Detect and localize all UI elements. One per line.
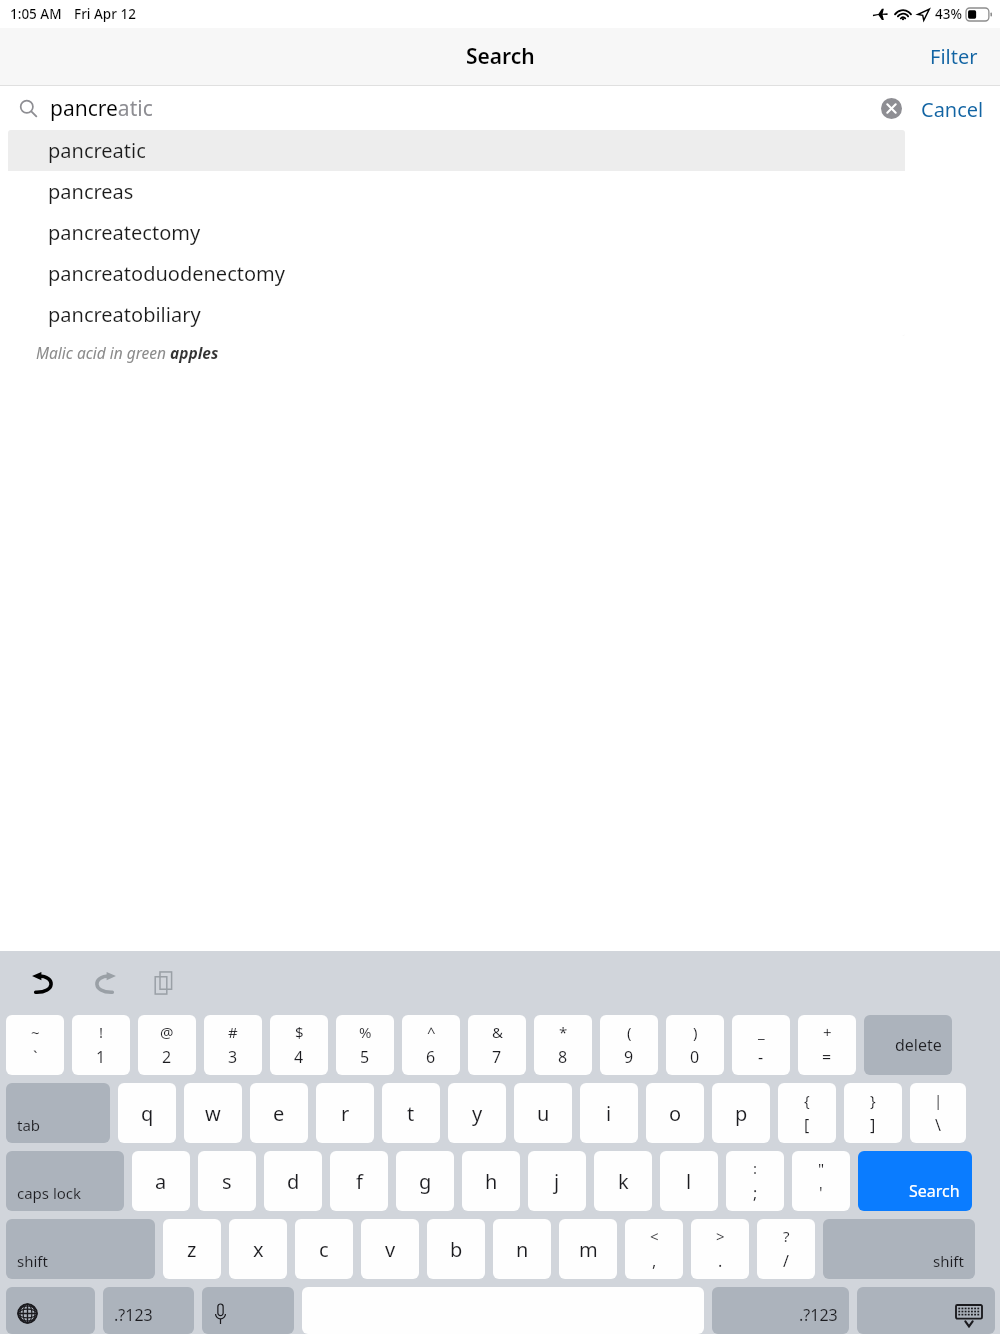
staticText: j xyxy=(554,1168,560,1195)
button[interactable]: } xyxy=(844,1083,902,1143)
button[interactable]: .?123 xyxy=(712,1287,849,1334)
staticText: e xyxy=(273,1100,285,1127)
button[interactable]: ~ xyxy=(6,1015,64,1075)
button[interactable]: p xyxy=(712,1083,770,1143)
button[interactable]: | xyxy=(910,1083,966,1143)
button[interactable]: x xyxy=(229,1219,287,1279)
button[interactable]: h xyxy=(462,1151,520,1211)
button[interactable]: ? xyxy=(757,1219,815,1279)
button[interactable]: " xyxy=(792,1151,850,1211)
staticText: % xyxy=(359,1022,372,1042)
button[interactable]: e xyxy=(250,1083,308,1143)
staticText: delete xyxy=(895,1034,942,1056)
button[interactable]: pancreatic xyxy=(0,86,869,130)
button[interactable]: Hide keyboard xyxy=(857,1287,995,1334)
button[interactable]: $ xyxy=(270,1015,328,1075)
staticText: & xyxy=(492,1022,503,1042)
button[interactable]: t xyxy=(382,1083,440,1143)
button[interactable]: pancreatobiliary xyxy=(8,294,905,335)
button[interactable]: l xyxy=(660,1151,718,1211)
staticText: } xyxy=(870,1090,876,1110)
button[interactable]: Paste xyxy=(142,961,186,1005)
staticText: pancreatic xyxy=(48,137,146,164)
button[interactable]: a xyxy=(132,1151,190,1211)
button[interactable]: pancreatectomy xyxy=(8,212,905,253)
button[interactable]: shift xyxy=(823,1219,975,1279)
staticText: 6 xyxy=(426,1046,436,1068)
button[interactable]: Clear text xyxy=(869,86,913,130)
button[interactable]: _ xyxy=(732,1015,790,1075)
button[interactable]: .?123 xyxy=(103,1287,194,1334)
button[interactable]: c xyxy=(295,1219,353,1279)
button[interactable]: q xyxy=(118,1083,176,1143)
staticText: 9 xyxy=(624,1046,634,1068)
button[interactable]: : xyxy=(726,1151,784,1211)
button[interactable]: @ xyxy=(138,1015,196,1075)
button[interactable]: f xyxy=(330,1151,388,1211)
button[interactable]: ) xyxy=(666,1015,724,1075)
staticText: > xyxy=(716,1226,725,1246)
button[interactable]: tab xyxy=(6,1083,110,1143)
button[interactable]: < xyxy=(625,1219,683,1279)
button[interactable]: * xyxy=(534,1015,592,1075)
button[interactable]: Dictate xyxy=(202,1287,294,1334)
button[interactable]: shift xyxy=(6,1219,155,1279)
staticText: z xyxy=(187,1236,197,1263)
staticText: returns results containing apples but no… xyxy=(36,314,366,335)
button[interactable]: > xyxy=(691,1219,749,1279)
button[interactable]: pancreas xyxy=(8,171,905,212)
staticText: _ xyxy=(758,1022,765,1042)
staticText: 1 xyxy=(96,1046,106,1068)
button[interactable]: n xyxy=(493,1219,551,1279)
button[interactable]: Undo xyxy=(22,961,66,1005)
staticText: pancreatic xyxy=(50,94,153,123)
staticText: caps lock xyxy=(17,1183,82,1203)
button[interactable]: Filter xyxy=(908,33,1000,80)
staticText: ; xyxy=(753,1182,758,1204)
staticText: " xyxy=(818,1158,825,1178)
button[interactable]: s xyxy=(198,1151,256,1211)
staticText: c xyxy=(319,1236,329,1263)
button[interactable]: m xyxy=(559,1219,617,1279)
button[interactable]: z xyxy=(163,1219,221,1279)
button[interactable]: j xyxy=(528,1151,586,1211)
button[interactable]: i xyxy=(580,1083,638,1143)
staticText: ) xyxy=(693,1022,698,1042)
button[interactable]: Change keyboard language xyxy=(6,1287,95,1334)
button[interactable]: r xyxy=(316,1083,374,1143)
staticText: returns results matching exactly like: xyxy=(36,187,303,208)
button[interactable]: u xyxy=(514,1083,572,1143)
button[interactable]: & xyxy=(468,1015,526,1075)
button[interactable]: Search xyxy=(858,1151,972,1211)
button[interactable]: { xyxy=(778,1083,836,1143)
button[interactable]: caps lock xyxy=(6,1151,124,1211)
button[interactable]: pancreatoduodenectomy xyxy=(8,253,905,294)
button[interactable]: ( xyxy=(600,1015,658,1075)
button[interactable]: g xyxy=(396,1151,454,1211)
button[interactable]: # xyxy=(204,1015,262,1075)
button[interactable]: ! xyxy=(72,1015,130,1075)
button[interactable]: k xyxy=(594,1151,652,1211)
button[interactable]: Cancel xyxy=(913,86,992,130)
button[interactable]: % xyxy=(336,1015,394,1075)
button[interactable]: b xyxy=(427,1219,485,1279)
button[interactable]: y xyxy=(448,1083,506,1143)
button[interactable]: delete xyxy=(864,1015,952,1075)
button[interactable]: ^ xyxy=(402,1015,460,1075)
button[interactable]: d xyxy=(264,1151,322,1211)
button[interactable]: o xyxy=(646,1083,704,1143)
button[interactable]: + xyxy=(798,1015,856,1075)
staticText: s xyxy=(222,1168,232,1195)
button[interactable]: Redo xyxy=(82,961,126,1005)
button[interactable]: v xyxy=(361,1219,419,1279)
staticText: Malic acid in green apples xyxy=(36,342,219,363)
button[interactable]: w xyxy=(184,1083,242,1143)
staticText: , xyxy=(652,1250,657,1272)
staticText: shift xyxy=(933,1251,964,1271)
staticText: - xyxy=(758,1046,764,1068)
staticText: Anthocyanin biosynthesis in red apples xyxy=(36,215,307,236)
button[interactable]: pancreatic xyxy=(8,130,905,171)
staticText: r xyxy=(341,1100,350,1127)
staticText: ` xyxy=(33,1046,38,1068)
